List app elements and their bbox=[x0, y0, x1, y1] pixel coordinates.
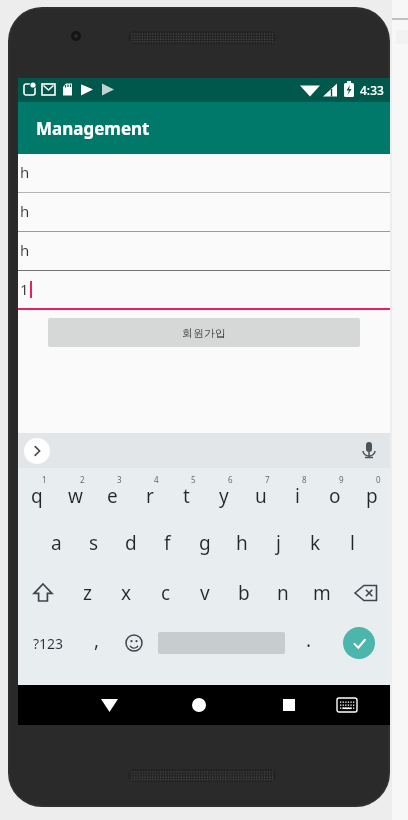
button[interactable]: n bbox=[263, 568, 302, 618]
staticText: 3 bbox=[117, 474, 122, 485]
staticText: e bbox=[107, 483, 118, 509]
button[interactable]: j bbox=[260, 518, 297, 568]
staticText: h bbox=[20, 240, 30, 260]
staticText: v bbox=[200, 580, 210, 606]
button[interactable]: 5 bbox=[168, 468, 205, 518]
staticText: x bbox=[121, 580, 132, 606]
button[interactable]: Voice input bbox=[358, 440, 380, 462]
staticText: b bbox=[238, 580, 250, 606]
staticText: l bbox=[350, 530, 355, 556]
staticText: k bbox=[310, 530, 321, 556]
staticText: i bbox=[295, 483, 300, 509]
button[interactable]: h bbox=[18, 154, 390, 193]
button[interactable]: 7 bbox=[242, 468, 279, 518]
staticText: c bbox=[161, 580, 171, 606]
button[interactable]: z bbox=[68, 568, 107, 618]
staticText: 4 bbox=[154, 474, 159, 485]
staticText: Management bbox=[36, 117, 150, 140]
staticText: 5 bbox=[191, 474, 196, 485]
staticText: 6 bbox=[228, 474, 233, 485]
staticText: n bbox=[277, 580, 289, 606]
button[interactable]: Shift bbox=[18, 568, 68, 618]
button[interactable]: g bbox=[186, 518, 223, 568]
button[interactable]: s bbox=[75, 518, 112, 568]
button[interactable]: a bbox=[38, 518, 75, 568]
button[interactable]: Management bbox=[18, 102, 390, 154]
staticText: s bbox=[89, 530, 99, 556]
staticText: 회원가입 bbox=[182, 326, 226, 340]
button[interactable]: 2 bbox=[56, 468, 94, 518]
staticText: ?123 bbox=[33, 634, 64, 653]
staticText: t bbox=[183, 483, 190, 509]
staticText: 9 bbox=[339, 474, 344, 485]
button[interactable]: b bbox=[224, 568, 263, 618]
staticText: p bbox=[366, 483, 378, 509]
button[interactable]: 1 bbox=[18, 468, 56, 518]
button[interactable]: Emoji bbox=[115, 618, 152, 668]
staticText: 8 bbox=[302, 474, 307, 485]
staticText: h bbox=[20, 201, 30, 221]
staticText: , bbox=[94, 627, 100, 653]
button[interactable]: 6 bbox=[205, 468, 242, 518]
staticText: y bbox=[219, 483, 229, 509]
button[interactable]: Back bbox=[80, 685, 138, 725]
staticText: 1 bbox=[20, 279, 29, 299]
button[interactable]: h bbox=[223, 518, 260, 568]
button[interactable]: h bbox=[18, 193, 390, 232]
staticText: w bbox=[68, 483, 83, 509]
button[interactable]: 0 bbox=[353, 468, 390, 518]
button[interactable]: Recents bbox=[260, 685, 318, 725]
staticText: r bbox=[146, 483, 154, 509]
staticText: u bbox=[255, 483, 267, 509]
staticText: o bbox=[329, 483, 341, 509]
button[interactable]: 4 bbox=[131, 468, 168, 518]
button[interactable]: Switch keyboard bbox=[318, 685, 376, 725]
button[interactable]: 3 bbox=[94, 468, 131, 518]
button[interactable]: 회원가입 bbox=[48, 318, 360, 347]
staticText: d bbox=[125, 530, 137, 556]
button[interactable]: Backspace bbox=[341, 568, 390, 618]
button[interactable]: Enter bbox=[327, 618, 390, 668]
staticText: f bbox=[164, 530, 171, 556]
staticText: z bbox=[83, 580, 92, 606]
button[interactable]: , bbox=[78, 618, 115, 668]
staticText: g bbox=[199, 530, 211, 556]
button[interactable]: 9 bbox=[316, 468, 353, 518]
staticText: a bbox=[51, 530, 62, 556]
button[interactable]: 1 bbox=[18, 271, 390, 310]
button[interactable]: l bbox=[334, 518, 371, 568]
staticText: q bbox=[31, 483, 43, 509]
staticText: h bbox=[20, 162, 30, 182]
button[interactable]: h bbox=[18, 232, 390, 271]
staticText: 4:33 bbox=[360, 82, 384, 98]
staticText: 7 bbox=[265, 474, 270, 485]
staticText: 1 bbox=[42, 474, 47, 485]
button[interactable]: v bbox=[185, 568, 224, 618]
staticText: 0 bbox=[376, 474, 381, 485]
button[interactable]: . bbox=[290, 618, 327, 668]
button[interactable]: k bbox=[297, 518, 334, 568]
button[interactable]: Home bbox=[170, 685, 228, 725]
button[interactable]: c bbox=[146, 568, 185, 618]
button[interactable]: 8 bbox=[279, 468, 316, 518]
button[interactable]: d bbox=[112, 518, 149, 568]
button[interactable]: x bbox=[107, 568, 146, 618]
button[interactable]: Expand suggestions bbox=[24, 438, 50, 464]
staticText: m bbox=[313, 580, 331, 606]
button[interactable]: ?123 bbox=[18, 618, 78, 668]
staticText: 2 bbox=[80, 474, 85, 485]
staticText: . bbox=[306, 627, 312, 653]
staticText: h bbox=[236, 530, 248, 556]
button[interactable]: m bbox=[302, 568, 341, 618]
button[interactable]: Space bbox=[152, 618, 290, 668]
staticText: j bbox=[276, 530, 281, 556]
button[interactable]: f bbox=[149, 518, 186, 568]
